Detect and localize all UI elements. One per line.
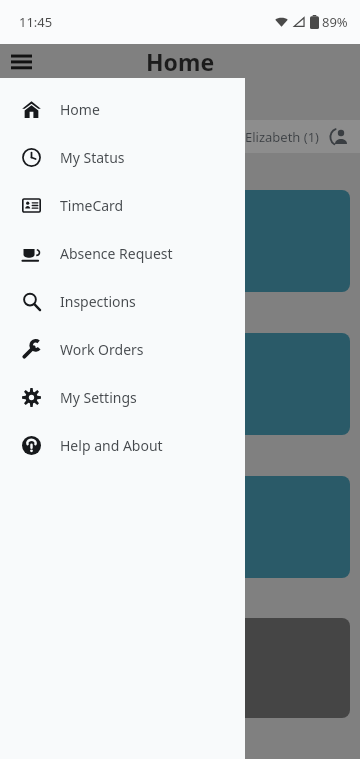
staticText: Absence Request <box>60 244 173 263</box>
staticText: Clock Out <box>28 248 120 274</box>
button[interactable] <box>10 618 350 718</box>
button[interactable]: Elizabeth (1) <box>0 120 360 153</box>
button[interactable]: Help and About <box>0 421 245 469</box>
button[interactable]: My Settings <box>0 373 245 421</box>
button[interactable]: Absence Request <box>0 229 245 277</box>
staticText: Help and About <box>60 436 163 455</box>
staticText: 89% <box>322 13 348 31</box>
button[interactable]: My Status <box>0 133 245 181</box>
button[interactable]: Clock Out <box>10 190 350 292</box>
button[interactable]: Work Orders <box>0 325 245 373</box>
staticText: 11:45 <box>19 13 53 31</box>
other: Profile <box>330 127 350 147</box>
staticText: Inspections <box>60 292 136 311</box>
staticText: TimeCard <box>60 196 124 215</box>
button[interactable]: Home <box>0 85 245 133</box>
button[interactable]: Inspections <box>0 277 245 325</box>
staticText: Work Orders <box>28 391 148 417</box>
staticText: Home <box>60 100 100 119</box>
staticText: Work Orders <box>60 340 144 359</box>
staticText: My Status <box>60 148 125 167</box>
button[interactable]: Open navigation menu <box>6 46 36 76</box>
button[interactable]: Work Orders <box>10 333 350 435</box>
staticText: Elizabeth (1) <box>245 128 320 146</box>
button[interactable]: TimeCard <box>0 181 245 229</box>
staticText: Home <box>146 46 215 77</box>
button[interactable]: Passengers <box>10 476 350 578</box>
staticText: My Settings <box>60 388 137 407</box>
